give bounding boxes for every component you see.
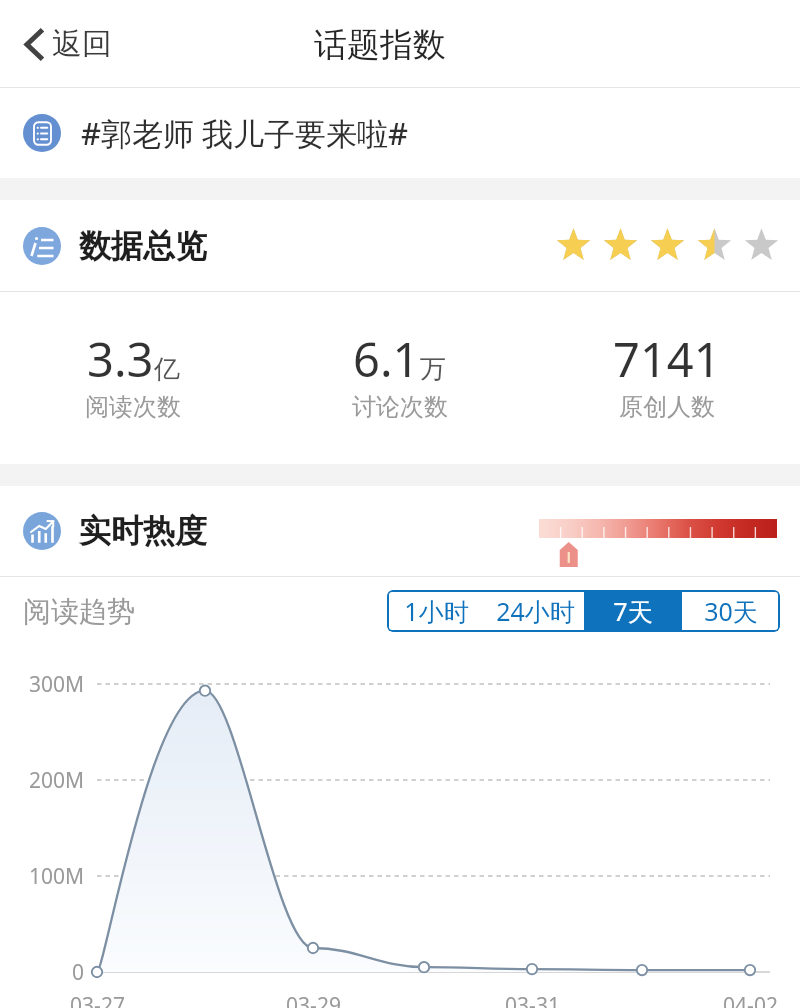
staticText: #郭老师 我儿子要来啦# [81, 112, 409, 154]
staticText: 100M [28, 862, 84, 891]
staticText: 讨论次数 [352, 392, 448, 422]
staticText: 阅读次数 [85, 392, 181, 422]
button[interactable]: #郭老师 我儿子要来啦# [0, 88, 800, 178]
button[interactable]: 7天 [584, 590, 682, 632]
button[interactable]: 30天 [682, 590, 780, 632]
staticText: 阅读趋势 [23, 594, 135, 629]
staticText: 03-29 [286, 991, 341, 1008]
staticText: 24小时 [496, 594, 575, 628]
staticText: 实时热度 [79, 511, 207, 551]
button[interactable]: Back [12, 15, 124, 73]
button[interactable]: 1小时 [387, 590, 486, 632]
staticText: 03-27 [70, 991, 125, 1008]
staticText: 04-02 [723, 991, 778, 1008]
staticText: 返回 [52, 25, 112, 63]
staticText: 7天 [613, 594, 653, 628]
staticText: 1小时 [404, 594, 469, 628]
staticText: 200M [28, 766, 84, 795]
staticText: 0 [71, 958, 84, 987]
staticText: 03-31 [505, 991, 560, 1008]
staticText: 亿 [154, 353, 180, 386]
staticText: 话题指数 [314, 24, 446, 66]
staticText: 数据总览 [79, 226, 207, 266]
staticText: 原创人数 [619, 392, 715, 422]
staticText: 7141 [613, 327, 721, 391]
staticText: 30天 [704, 594, 758, 628]
staticText: 万 [420, 353, 446, 386]
button[interactable]: 24小时 [486, 590, 584, 632]
staticText: 3.3 [87, 327, 154, 391]
staticText: 6.1 [353, 327, 420, 391]
staticText: 300M [28, 670, 84, 699]
